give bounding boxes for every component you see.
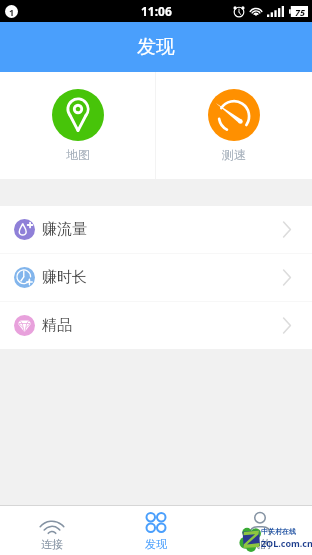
staticText: 地图 bbox=[66, 147, 90, 162]
button[interactable]: 测速 bbox=[156, 72, 312, 179]
staticText: ZOL.com.cn bbox=[261, 537, 312, 549]
staticText: 发现 bbox=[145, 537, 167, 551]
button[interactable]: Discover bbox=[104, 506, 208, 555]
staticText: 11:06 bbox=[141, 3, 172, 19]
staticText: 中关村在线 bbox=[261, 527, 296, 536]
button[interactable]: 地图 bbox=[0, 72, 155, 179]
button[interactable]: Profile bbox=[208, 506, 312, 555]
staticText: 发现 bbox=[137, 35, 175, 59]
staticText: 我的 bbox=[249, 537, 271, 551]
button[interactable]: 赚时长 bbox=[0, 254, 312, 301]
button[interactable]: 赚流量 bbox=[0, 206, 312, 253]
staticText: 1 bbox=[9, 6, 15, 18]
staticText: 精品 bbox=[42, 316, 72, 335]
staticText: 赚流量 bbox=[42, 220, 87, 239]
button[interactable]: 精品 bbox=[0, 302, 312, 349]
staticText: 测速 bbox=[222, 147, 246, 162]
staticText: 连接 bbox=[41, 537, 63, 551]
staticText: 赚时长 bbox=[42, 268, 87, 287]
staticText: 75 bbox=[295, 6, 305, 17]
button[interactable]: Connect bbox=[0, 506, 104, 555]
